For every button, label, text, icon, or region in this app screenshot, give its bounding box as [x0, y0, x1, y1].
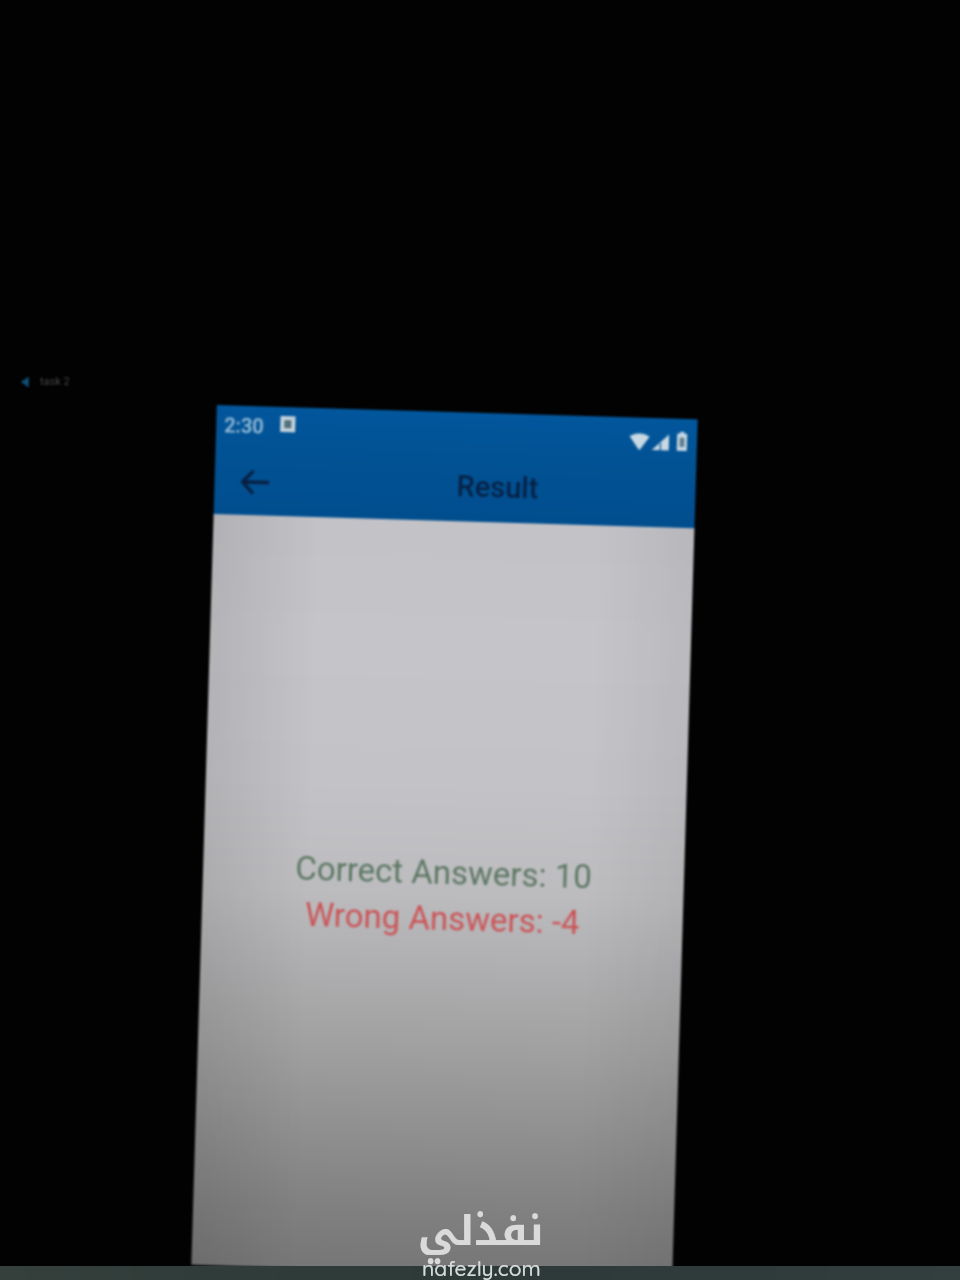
staticText: Correct Answers: 10 — [295, 849, 593, 896]
button[interactable]: Back — [230, 457, 279, 507]
staticText: Wrong Answers: -4 — [304, 895, 580, 942]
staticText: Result — [456, 469, 539, 506]
staticText: nafezly.com — [422, 1255, 541, 1280]
staticText: task 2 — [40, 375, 70, 388]
staticText: 2:30 — [224, 413, 265, 437]
staticText: نفذلي — [418, 1192, 544, 1270]
